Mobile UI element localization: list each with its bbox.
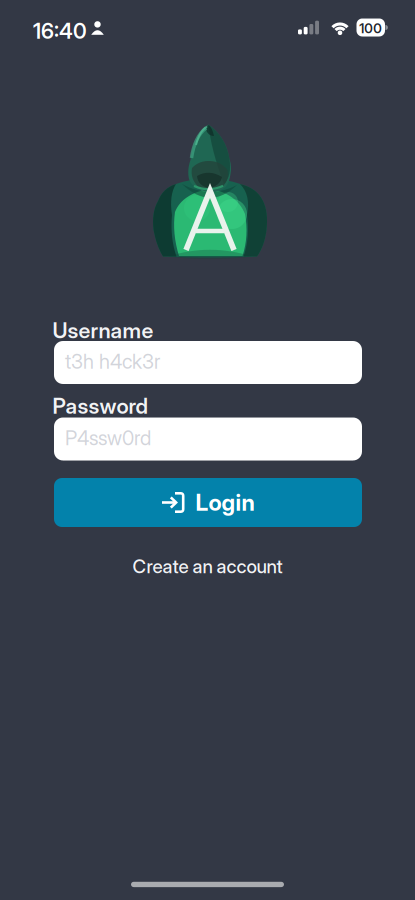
textField[interactable]: t3h h4ck3r: [54, 341, 362, 384]
button[interactable]: Login: [54, 478, 362, 527]
button[interactable]: Create an account: [132, 555, 282, 577]
staticText: Create an account: [132, 555, 282, 577]
staticText: P4ssw0rd: [65, 426, 151, 450]
staticText: t3h h4ck3r: [65, 350, 160, 373]
staticText: 16:40: [33, 18, 87, 44]
staticText: Login: [195, 489, 254, 516]
textField[interactable]: P4ssw0rd: [54, 417, 362, 460]
staticText: Password: [52, 393, 148, 419]
staticText: 100: [359, 21, 382, 36]
staticText: Username: [52, 318, 153, 343]
